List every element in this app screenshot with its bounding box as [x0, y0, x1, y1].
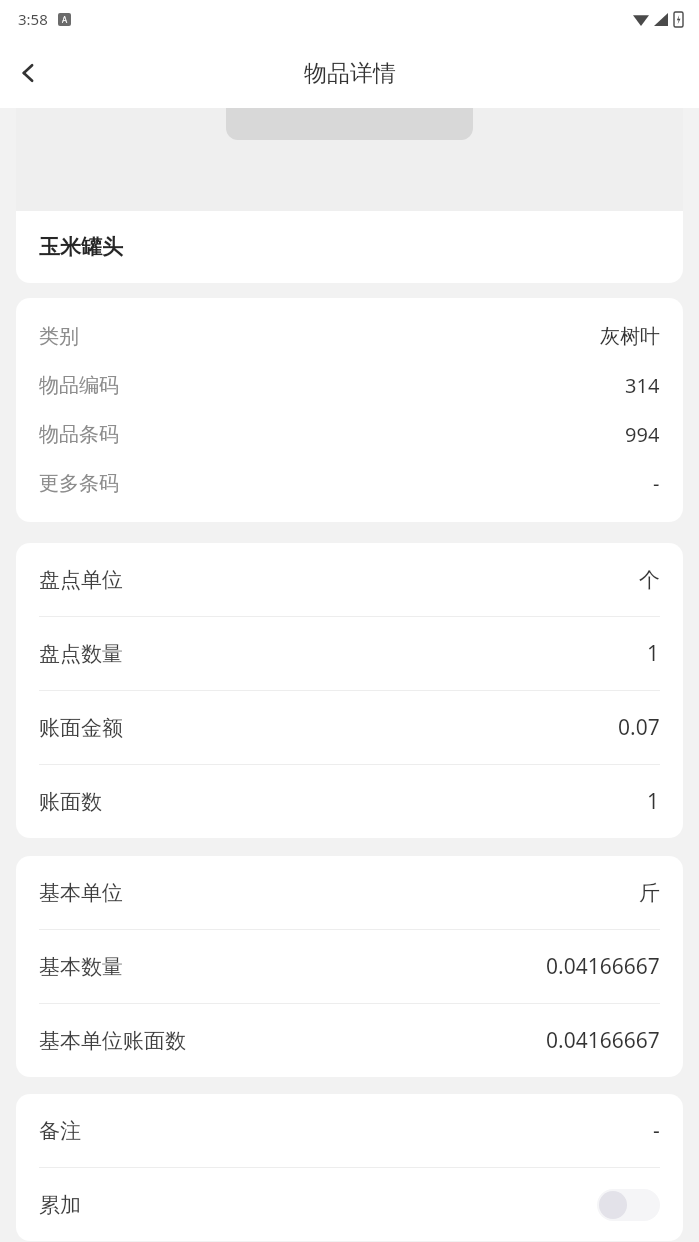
- button[interactable]: 更多条码: [16, 459, 683, 508]
- staticText: 斤: [639, 880, 660, 906]
- button[interactable]: 账面金额: [16, 691, 683, 764]
- button[interactable]: 备注: [16, 1094, 683, 1167]
- staticText: 盘点数量: [39, 641, 123, 667]
- button[interactable]: 累加: [16, 1168, 683, 1241]
- button[interactable]: 玉米罐头: [16, 211, 683, 283]
- staticText: 1: [647, 639, 660, 668]
- staticText: 玉米罐头: [39, 234, 123, 260]
- staticText: 基本单位: [39, 880, 123, 906]
- staticText: 994: [625, 421, 660, 448]
- staticText: 物品条码: [39, 422, 119, 447]
- button[interactable]: 盘点数量: [16, 617, 683, 690]
- staticText: 账面数: [39, 789, 102, 815]
- staticText: 3:58: [18, 9, 48, 29]
- staticText: 314: [625, 372, 660, 399]
- staticText: 物品编码: [39, 373, 119, 398]
- staticText: -: [653, 1116, 660, 1145]
- button[interactable]: 盘点单位: [16, 543, 683, 616]
- staticText: 基本单位账面数: [39, 1028, 186, 1054]
- staticText: 类别: [39, 324, 79, 349]
- staticText: 灰树叶: [600, 324, 660, 349]
- button[interactable]: 物品编码: [16, 361, 683, 410]
- button[interactable]: 账面数: [16, 765, 683, 838]
- staticText: A: [62, 14, 68, 25]
- button[interactable]: 基本单位账面数: [16, 1004, 683, 1077]
- staticText: 1: [647, 787, 660, 816]
- staticText: 累加: [39, 1192, 81, 1218]
- button[interactable]: 物品条码: [16, 410, 683, 459]
- staticText: 基本数量: [39, 954, 123, 980]
- staticText: -: [653, 470, 660, 497]
- staticText: 备注: [39, 1118, 81, 1144]
- staticText: 账面金额: [39, 715, 123, 741]
- staticText: 盘点单位: [39, 567, 123, 593]
- button[interactable]: Back: [6, 50, 52, 96]
- staticText: 0.04166667: [546, 1026, 660, 1055]
- staticText: 更多条码: [39, 471, 119, 496]
- button[interactable]: 类别: [16, 312, 683, 361]
- staticText: 0.04166667: [546, 952, 660, 981]
- button[interactable]: 基本单位: [16, 856, 683, 929]
- staticText: 物品详情: [304, 59, 396, 88]
- staticText: 个: [639, 567, 660, 593]
- staticText: 0.07: [618, 713, 660, 742]
- button[interactable]: 基本数量: [16, 930, 683, 1003]
- button[interactable]: Accumulate toggle: [597, 1189, 660, 1221]
